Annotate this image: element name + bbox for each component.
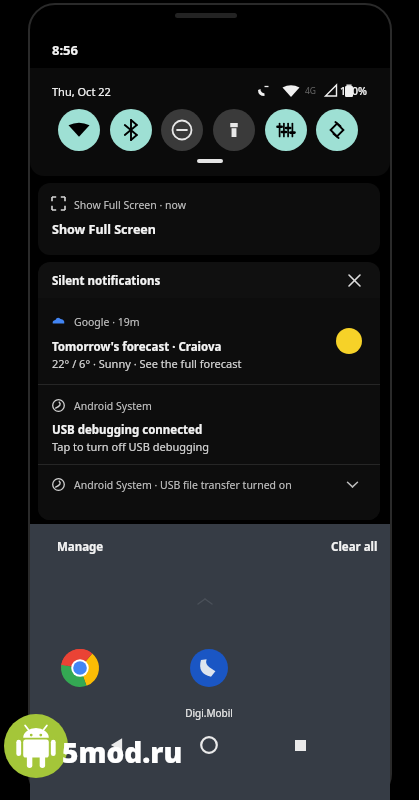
button[interactable]: Settings	[265, 109, 307, 151]
staticText: Android System	[74, 399, 152, 413]
staticText: 4G	[305, 85, 317, 97]
button[interactable]: Flashlight	[213, 109, 255, 151]
staticText: Manage	[57, 539, 104, 555]
button[interactable]: Do not disturb	[161, 109, 203, 151]
staticText: Silent notifications	[52, 273, 161, 289]
button[interactable]: Back	[100, 728, 134, 762]
button[interactable]: Auto-rotate	[316, 109, 358, 151]
button[interactable]: Clear all	[300, 530, 370, 554]
staticText: 5mod.ru	[62, 733, 183, 771]
button[interactable]: Expand	[338, 470, 366, 498]
staticText: Show Full Screen · now	[74, 198, 186, 212]
button[interactable]: Chrome	[60, 648, 100, 688]
button[interactable]: Dismiss silent notifications	[341, 267, 367, 293]
button[interactable]: Recent apps	[283, 728, 317, 762]
staticText: Show Full Screen	[52, 221, 156, 238]
button[interactable]: Home	[192, 728, 226, 762]
staticText: USB debugging connected	[52, 422, 203, 438]
button[interactable]: Bluetooth	[110, 109, 152, 151]
button[interactable]: Manage	[48, 530, 118, 554]
staticText: 22° / 6° · Sunny · See the full forecast	[52, 356, 242, 371]
button[interactable]: Digi.Mobil	[189, 648, 229, 688]
staticText: Google · 19m	[74, 315, 140, 329]
staticText: Tomorrow's forecast · Craiova	[52, 339, 222, 355]
staticText: Digi.Mobil	[185, 706, 233, 720]
button[interactable]: Google · 19m	[38, 298, 380, 384]
staticText: Thu, Oct 22	[52, 84, 111, 99]
button[interactable]: Wi-Fi	[58, 109, 100, 151]
staticText: Android System · USB file transfer turne…	[74, 478, 292, 492]
staticText: Clear all	[331, 539, 378, 555]
staticText: 8:56	[52, 41, 78, 59]
staticText: 100%	[340, 84, 367, 98]
button[interactable]: Android System	[38, 385, 380, 464]
button[interactable]: Android System · USB file transfer turne…	[38, 465, 380, 520]
button[interactable]: Show Full Screen · now	[38, 183, 380, 255]
staticText: Tap to turn off USB debugging	[52, 439, 210, 454]
